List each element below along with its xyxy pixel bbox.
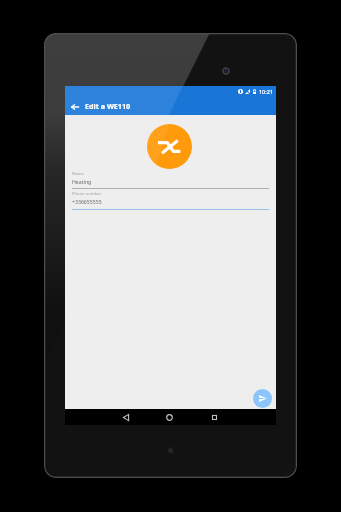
staticText: +336655555	[72, 198, 102, 205]
staticText: Name	[72, 171, 84, 177]
button[interactable]: Recent apps	[206, 409, 223, 425]
button[interactable]: Send	[253, 389, 272, 408]
button[interactable]: Back	[117, 409, 134, 425]
button[interactable]: Home	[161, 409, 178, 425]
button[interactable]: Navigate up	[67, 96, 83, 112]
staticText: 10:21	[259, 88, 273, 95]
staticText: Edit a WE110	[85, 101, 131, 111]
button[interactable]: Device icon	[147, 124, 192, 169]
staticText: Phone number	[72, 191, 102, 197]
staticText: Heating	[72, 178, 92, 185]
